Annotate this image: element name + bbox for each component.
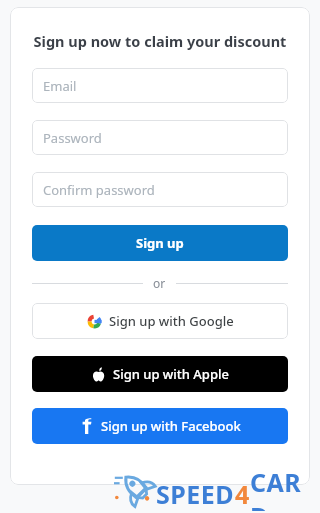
button[interactable]: Apple (32, 356, 288, 392)
other: Apple (91, 367, 106, 382)
staticText: Sign up with Google (109, 312, 234, 330)
button[interactable]: Sign up (32, 225, 288, 261)
staticText: Sign up with Facebook (101, 417, 241, 435)
button[interactable]: Password (32, 120, 288, 155)
button[interactable]: Google (32, 303, 288, 339)
other: Google (87, 314, 102, 329)
staticText: CARD (250, 465, 314, 511)
other: Speed4Card logo (114, 471, 154, 505)
staticText: Confirm password (43, 181, 155, 199)
button[interactable]: Confirm password (32, 172, 288, 207)
button[interactable]: Facebook (32, 408, 288, 444)
button[interactable]: Email (32, 68, 288, 103)
staticText: or (153, 275, 166, 291)
staticText: Password (43, 129, 102, 147)
staticText: SPEED (156, 477, 235, 511)
staticText: Sign up (136, 234, 184, 252)
staticText: Email (43, 77, 77, 95)
staticText: Sign up now to claim your discount (32, 31, 288, 51)
staticText: Sign up with Apple (113, 365, 229, 383)
staticText: 4 (235, 477, 250, 511)
other: Facebook (79, 419, 94, 434)
